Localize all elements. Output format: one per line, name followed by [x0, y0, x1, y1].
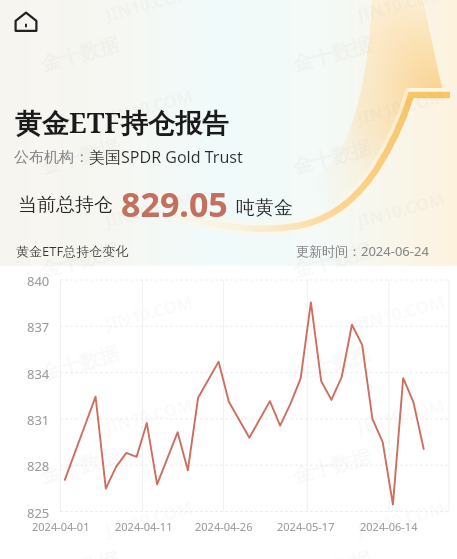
staticText: 834 — [27, 365, 50, 383]
staticText: 2024-06-14 — [360, 519, 418, 534]
staticText: JIN10.COM — [103, 187, 195, 232]
staticText: JIN10.COM — [355, 0, 447, 26]
staticText: JIN10.COM — [355, 187, 447, 232]
staticText: 公布机构： — [14, 148, 89, 167]
staticText: JIN10.COM — [103, 496, 195, 541]
staticText: 2024-04-26 — [195, 519, 253, 534]
staticText: JIN10.COM — [355, 84, 447, 129]
staticText: 840 — [27, 272, 50, 290]
staticText: JIN10.COM — [103, 84, 195, 129]
staticText: 金十数据 — [290, 341, 374, 386]
staticText: 828 — [27, 457, 50, 475]
staticText: 吨黄金 — [236, 196, 293, 220]
staticText: 金十数据 — [290, 135, 374, 180]
staticText: JIN10.COM — [355, 496, 447, 541]
staticText: JIN10.COM — [103, 393, 195, 438]
staticText: 金十数据 — [38, 341, 122, 386]
staticText: 金十数据 — [38, 444, 122, 489]
staticText: JIN10.COM — [355, 393, 447, 438]
staticText: 2024-04-01 — [32, 519, 90, 534]
staticText: 金十数据 — [38, 238, 122, 283]
staticText: 829.05 — [121, 181, 228, 227]
staticText: 更新时间：2024-06-24 — [296, 242, 429, 260]
staticText: 美国SPDR Gold Trust — [89, 146, 243, 168]
staticText: 2024-05-17 — [277, 519, 335, 534]
staticText: 金十数据 — [290, 238, 374, 283]
staticText: 金十数据 — [290, 32, 374, 77]
staticText: 黄金ETF总持仓变化 — [16, 242, 129, 260]
staticText: 当前总持仓 — [18, 193, 113, 217]
staticText: 837 — [27, 318, 50, 336]
staticText: 2024-04-11 — [115, 519, 173, 534]
staticText: JIN10.COM — [355, 290, 447, 335]
staticText: 831 — [27, 411, 50, 429]
staticText: 金十数据 — [38, 135, 122, 180]
staticText: 黄金ETF持仓报告 — [15, 104, 230, 141]
staticText: JIN10.COM — [103, 0, 195, 26]
button[interactable]: Home — [13, 9, 39, 35]
staticText: 825 — [27, 504, 50, 522]
